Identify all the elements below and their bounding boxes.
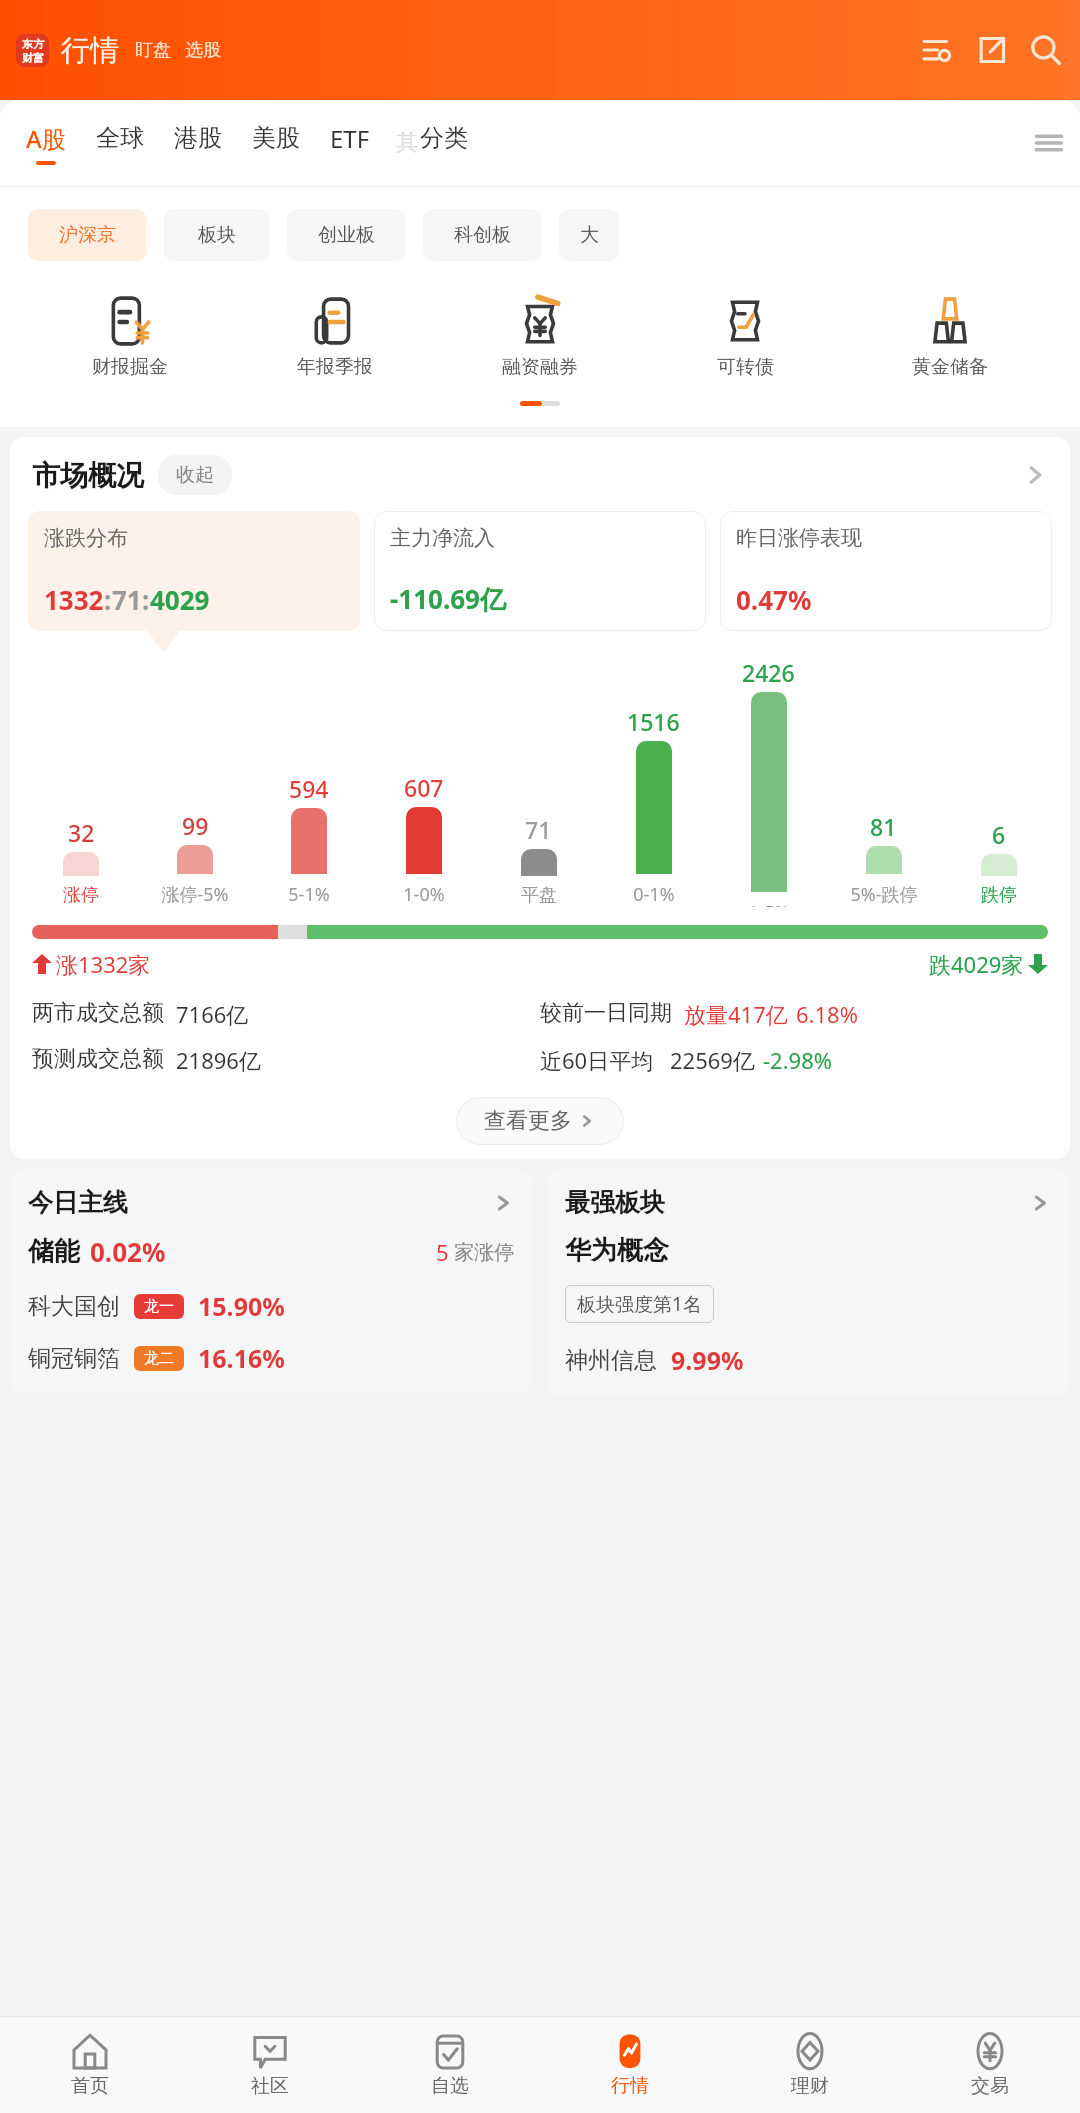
staticText: 板块强度第1名 — [577, 1291, 702, 1317]
button[interactable]: 自选 — [360, 2017, 540, 2113]
staticText: 71 — [112, 582, 142, 617]
button[interactable]: 盯盘 — [135, 39, 171, 62]
staticText: 科创板 — [454, 223, 511, 247]
staticText: 交易 — [971, 2074, 1009, 2098]
button[interactable]: 收起 — [176, 463, 214, 487]
staticText: 9.99% — [671, 1343, 744, 1377]
staticText: 最强板块 — [565, 1187, 665, 1218]
staticText: 华为概念 — [565, 1234, 669, 1267]
staticText: 21896亿 — [176, 1045, 261, 1075]
staticText: 分类 — [420, 123, 468, 153]
button[interactable]: 年报季报 — [260, 289, 410, 385]
staticText: ETF — [330, 122, 370, 155]
staticText: -110.69亿 — [390, 581, 506, 617]
staticText: 7166亿 — [176, 999, 249, 1029]
button[interactable]: 分类 — [420, 123, 468, 163]
button[interactable]: 理财 — [720, 2017, 900, 2113]
staticText: A股 — [26, 122, 66, 155]
button[interactable]: 板块 — [164, 209, 269, 261]
staticText: 0-1% — [633, 882, 675, 907]
staticText: 收起 — [176, 463, 214, 487]
staticText: 社区 — [251, 2074, 289, 2098]
button[interactable]: 查看更多 — [456, 1097, 624, 1145]
staticText: 81 — [870, 811, 897, 842]
staticText: 1-5% — [748, 900, 790, 907]
staticText: 沪深京 — [59, 223, 116, 247]
staticText: 家涨停 — [449, 1238, 515, 1265]
staticText: 港股 — [174, 123, 222, 153]
staticText: 跌停 — [981, 884, 1017, 907]
staticText: 其 — [396, 129, 418, 157]
button[interactable]: 最强板块 — [547, 1169, 1070, 1395]
button[interactable]: 大 — [559, 209, 619, 261]
staticText: 5 — [436, 1237, 449, 1267]
staticText: 涨1332家 — [56, 949, 151, 979]
staticText: 财富 — [22, 51, 44, 65]
button[interactable]: 科创板 — [423, 209, 541, 261]
button[interactable]: 交易 — [900, 2017, 1080, 2113]
staticText: 行情 — [611, 2074, 649, 2098]
staticText: 预测成交总额 — [32, 1045, 164, 1073]
button[interactable]: 港股 — [174, 123, 222, 163]
button[interactable]: Filter settings — [920, 33, 954, 67]
button[interactable]: 昨日涨停表现 — [720, 511, 1052, 631]
button[interactable]: 选股 — [185, 39, 221, 62]
staticText: 22569亿 — [670, 1045, 755, 1075]
staticText: 4029 — [150, 582, 210, 617]
button[interactable]: 沪深京 — [28, 209, 146, 261]
staticText: 查看更多 — [484, 1107, 572, 1135]
button[interactable]: 融资融券 — [465, 289, 615, 385]
staticText: 6 — [992, 819, 1006, 850]
button[interactable]: 创业板 — [287, 209, 405, 261]
staticText: 1332 — [44, 582, 104, 617]
staticText: 平盘 — [521, 884, 557, 907]
staticText: 铜冠铜箔 — [28, 1344, 120, 1373]
button[interactable]: 今日主线 — [10, 1169, 533, 1393]
button[interactable]: 黄金储备 — [875, 289, 1025, 385]
button[interactable]: Share — [976, 34, 1008, 66]
staticText: 1516 — [627, 706, 680, 737]
staticText: 1-0% — [403, 882, 445, 907]
button[interactable]: 财报掘金 — [55, 289, 205, 385]
staticText: 东方 — [22, 37, 44, 51]
staticText: 市场概况 — [32, 458, 144, 493]
button[interactable]: ETF — [330, 122, 370, 165]
button[interactable]: 美股 — [252, 123, 300, 163]
staticText: 理财 — [791, 2074, 829, 2098]
staticText: 可转债 — [717, 355, 774, 379]
staticText: 昨日涨停表现 — [736, 525, 862, 551]
button[interactable]: 市场概况 — [32, 455, 1048, 495]
button[interactable]: 行情 — [540, 2017, 720, 2113]
button[interactable]: 行情 — [61, 32, 119, 69]
staticText: 两市成交总额 — [32, 999, 164, 1027]
staticText: 放量417亿 — [684, 999, 788, 1029]
staticText: 16.16% — [198, 1341, 285, 1375]
staticText: 龙二 — [144, 1349, 174, 1368]
staticText: 较前一日同期 — [540, 999, 672, 1027]
staticText: 板块 — [198, 223, 236, 247]
staticText: 15.90% — [198, 1289, 285, 1323]
button[interactable]: A股 — [26, 122, 66, 165]
staticText: 自选 — [431, 2074, 469, 2098]
staticText: 神州信息 — [565, 1346, 657, 1375]
button[interactable]: 社区 — [180, 2017, 360, 2113]
staticText: : — [104, 582, 112, 617]
button[interactable]: 全球 — [96, 123, 144, 163]
button[interactable]: 可转债 — [670, 289, 820, 385]
staticText: 全球 — [96, 123, 144, 153]
button[interactable]: 首页 — [0, 2017, 180, 2113]
staticText: 2426 — [742, 657, 795, 688]
staticText: -2.98% — [763, 1045, 833, 1075]
button[interactable]: Search — [1030, 34, 1062, 66]
button[interactable]: 主力净流入 — [374, 511, 706, 631]
staticText: 大 — [580, 223, 599, 247]
staticText: 0.47% — [736, 582, 812, 617]
staticText: 近60日平均 — [540, 1045, 654, 1075]
staticText: 涨停 — [63, 884, 99, 907]
staticText: 融资融券 — [502, 355, 578, 379]
button[interactable]: 涨跌分布 — [28, 511, 360, 631]
button[interactable]: 东方 — [16, 34, 49, 67]
staticText: 5-1% — [288, 882, 330, 907]
staticText: 涨停-5% — [161, 882, 229, 907]
button[interactable]: More tabs — [1032, 126, 1066, 160]
